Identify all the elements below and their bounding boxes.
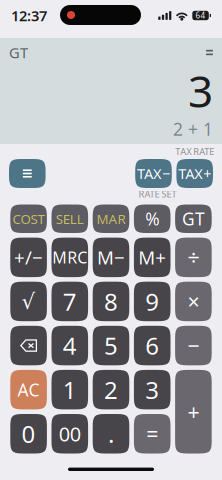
staticText: TAX RATE [175,145,214,158]
staticText: % [145,207,159,230]
button[interactable]: 4 [51,326,88,365]
staticText: +/− [14,245,43,270]
button[interactable]: 7 [51,282,88,321]
button[interactable]: M− [93,238,129,277]
staticText: ÷ [187,243,199,271]
button[interactable]: . [93,414,129,453]
staticText: AC [18,378,40,401]
button[interactable]: % [134,204,170,233]
button[interactable]: 5 [93,326,129,365]
staticText: 1 [63,374,77,406]
staticText: 0 [22,418,36,450]
staticText: 7 [63,285,77,317]
staticText: TAX− [137,164,170,183]
staticText: MAR [96,210,125,228]
button[interactable]: 0 [10,414,47,453]
staticText: 9 [145,285,159,317]
button[interactable]: 00 [51,414,88,453]
button[interactable]: 2 [93,370,129,409]
button[interactable]: × [175,282,212,321]
staticText: 6 [145,330,159,361]
staticText: GT [182,207,205,230]
button[interactable]: 6 [134,326,170,365]
staticText: + [187,397,199,426]
staticText: √ [22,289,36,313]
button[interactable]: 3 [134,370,170,409]
staticText: 3 [145,374,159,406]
staticText: 64 [196,10,206,21]
staticText: 4 [63,330,77,361]
staticText: 2 + 1 [173,117,213,140]
staticText: COST [13,210,45,228]
button[interactable]: 1 [51,370,88,409]
staticText: SELL [56,210,84,228]
staticText: × [187,287,199,316]
button[interactable]: TAX+ [176,159,213,188]
button[interactable]: M+ [134,238,170,277]
button[interactable]: Backspace [10,326,47,365]
button[interactable]: = [134,414,170,453]
staticText: − [187,331,199,360]
button[interactable]: ÷ [175,238,212,277]
staticText: 5 [104,330,118,361]
button[interactable]: MAR [93,204,129,233]
staticText: GT [9,43,28,62]
staticText: 3 [188,61,213,120]
staticText: = [146,420,158,448]
button[interactable]: Menu [9,159,46,188]
button[interactable]: + [175,370,212,453]
button[interactable]: TAX− [135,159,172,188]
button[interactable]: +/− [10,238,47,277]
button[interactable]: √ [10,282,47,321]
button[interactable]: MRC [51,238,88,277]
button[interactable]: − [175,326,212,365]
button[interactable]: 9 [134,282,170,321]
button[interactable]: SELL [51,204,88,233]
staticText: TAX+ [178,164,211,183]
staticText: MRC [52,247,87,268]
staticText: . [108,418,114,450]
staticText: 00 [59,420,81,447]
button[interactable]: COST [10,204,47,233]
staticText: RATE SET [138,188,176,200]
button[interactable]: 8 [93,282,129,321]
staticText: 2 [104,374,118,406]
staticText: 12:37 [11,6,47,25]
staticText: 8 [104,285,118,317]
button[interactable]: GT [175,204,212,233]
staticText: M+ [138,245,166,270]
staticText: M− [97,245,125,270]
button[interactable]: AC [10,370,47,409]
